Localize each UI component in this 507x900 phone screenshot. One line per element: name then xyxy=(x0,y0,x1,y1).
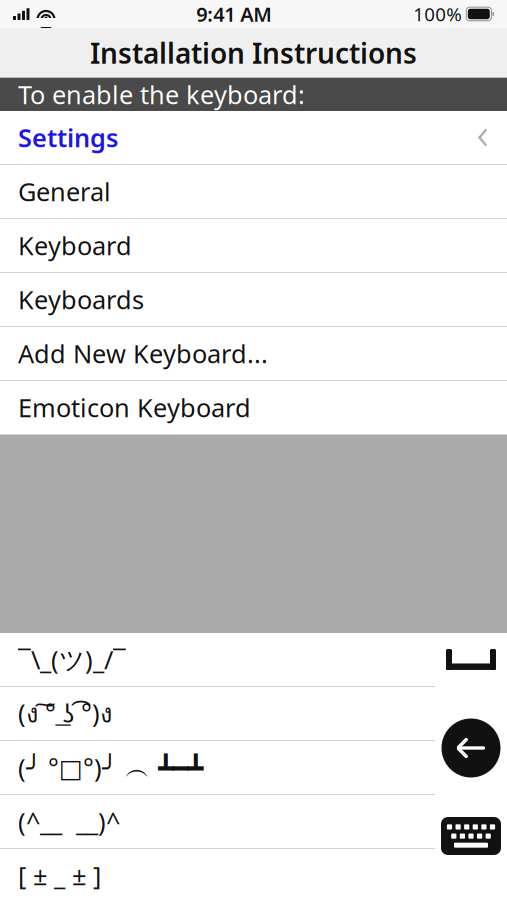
button[interactable]: ¯\_(ツ)_/¯ xyxy=(0,633,507,687)
button[interactable]: Keyboards xyxy=(0,273,507,327)
staticText: [ ± _ ± ] xyxy=(18,859,101,892)
button[interactable]: (^__ __)^ xyxy=(0,795,507,849)
button[interactable]: Add New Keyboard... xyxy=(0,327,507,381)
staticText: Keyboards xyxy=(18,283,144,316)
button[interactable]: (ง ͠° ͟ʖ ͡°)ง xyxy=(0,687,507,741)
button[interactable]: Next keyboard xyxy=(435,811,507,861)
button[interactable]: Settings xyxy=(0,111,507,165)
button[interactable]: General xyxy=(0,165,507,219)
staticText: 100% xyxy=(413,2,462,26)
staticText: Installation Instructions xyxy=(90,34,417,72)
staticText: ¯\_(ツ)_/¯ xyxy=(18,643,126,676)
staticText: To enable the keyboard: xyxy=(18,78,305,111)
staticText: (╯ °□°)╯ ︵ ┻━┻ xyxy=(18,751,203,784)
button[interactable]: [ ± _ ± ] xyxy=(0,849,507,900)
button[interactable]: (╯ °□°)╯ ︵ ┻━┻ xyxy=(0,741,507,795)
staticText: (ง ͠° ͟ʖ ͡°)ง xyxy=(18,694,112,733)
staticText: Settings xyxy=(18,121,118,154)
button[interactable]: Keyboard xyxy=(0,219,507,273)
button[interactable]: Emoticon Keyboard xyxy=(0,381,507,435)
staticText: Add New Keyboard... xyxy=(18,337,268,370)
staticText: Keyboard xyxy=(18,229,132,262)
staticText: General xyxy=(18,175,111,208)
staticText: Emoticon Keyboard xyxy=(18,391,251,424)
staticText: 9:41 AM xyxy=(196,1,272,27)
button[interactable]: Insert space xyxy=(435,633,507,686)
staticText: (^__ __)^ xyxy=(18,805,120,838)
button[interactable]: Delete xyxy=(435,713,507,783)
